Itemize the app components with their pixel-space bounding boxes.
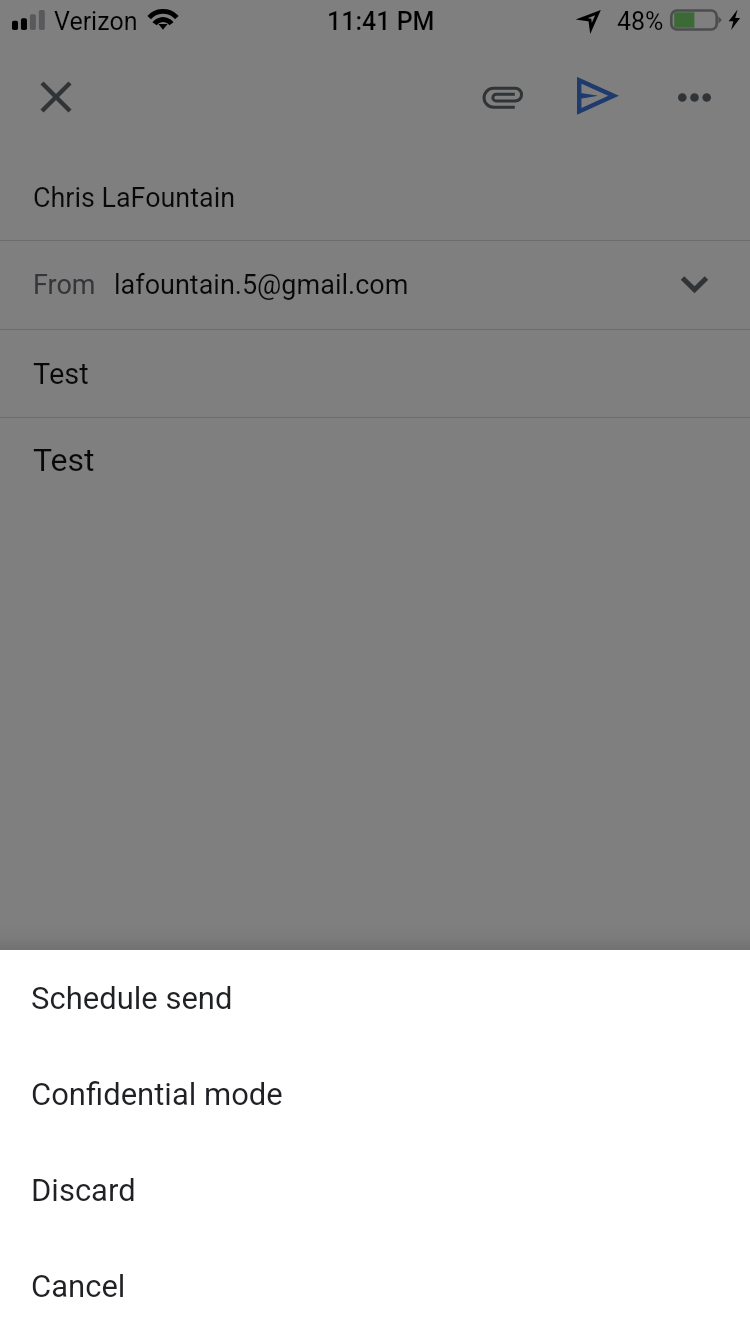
staticText: 11:41 PM [327,7,435,36]
staticText: Schedule send [31,980,233,1016]
staticText: Confidential mode [31,1076,283,1112]
staticText: Discard [31,1172,136,1208]
staticText: From [33,269,96,301]
button[interactable]: Discard [0,1142,750,1238]
staticText: Test [33,357,89,391]
staticText: 48% [617,7,664,36]
staticText: Cancel [31,1268,126,1304]
button[interactable]: From [0,241,750,329]
button[interactable]: More options [652,55,736,139]
button[interactable]: Test [0,330,750,417]
button[interactable]: Attach file [459,55,543,139]
button[interactable]: Close [14,55,98,139]
button[interactable]: Cancel [0,1238,750,1334]
staticText: lafountain.5@gmail.com [114,269,409,301]
button[interactable]: Send [555,54,639,138]
button[interactable]: Chris LaFountain [0,141,750,240]
staticText: Test [33,441,95,479]
button[interactable]: Schedule send [0,950,750,1046]
staticText: Chris LaFountain [33,182,236,214]
staticText: Verizon [54,7,138,36]
button[interactable]: Confidential mode [0,1046,750,1142]
